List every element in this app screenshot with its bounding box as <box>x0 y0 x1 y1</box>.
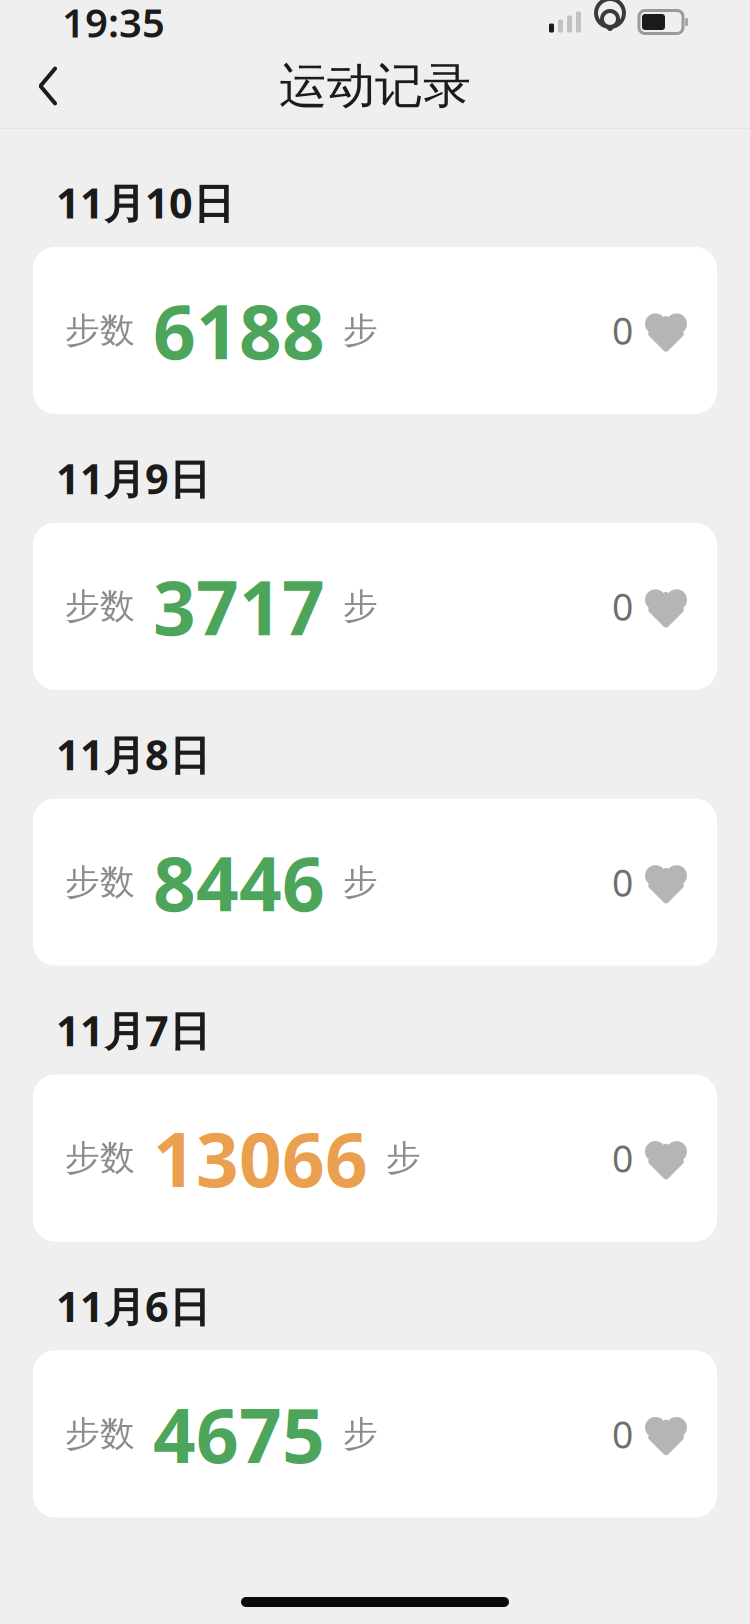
staticText: 运动记录 <box>279 56 471 115</box>
staticText: 11月7日 <box>56 1003 210 1058</box>
staticText: 19:35 <box>62 0 165 48</box>
button[interactable]: 步数 <box>33 1075 717 1242</box>
staticText: 6188 <box>153 281 325 380</box>
staticText: 11月10日 <box>56 175 234 230</box>
button[interactable]: Back <box>18 56 78 116</box>
staticText: 8446 <box>153 833 325 932</box>
staticText: 13066 <box>153 1108 368 1208</box>
staticText: 11月8日 <box>56 727 210 782</box>
staticText: 步数 <box>65 1137 135 1179</box>
staticText: 步 <box>343 1413 378 1455</box>
button[interactable]: 步数 <box>33 523 717 690</box>
staticText: 11月9日 <box>56 451 210 506</box>
staticText: 0 <box>612 306 633 355</box>
staticText: 11月6日 <box>56 1279 210 1333</box>
staticText: 步数 <box>65 585 135 628</box>
staticText: 步 <box>343 861 378 903</box>
staticText: 0 <box>612 1409 633 1459</box>
staticText: 步 <box>343 585 378 628</box>
staticText: 0 <box>612 857 633 907</box>
button[interactable]: 步数 <box>33 247 717 414</box>
staticText: 步数 <box>65 309 135 352</box>
button[interactable]: 步数 <box>33 1350 717 1517</box>
staticText: 步数 <box>65 1413 135 1455</box>
staticText: 步 <box>343 309 378 352</box>
staticText: 步 <box>386 1137 421 1179</box>
staticText: 3717 <box>153 557 325 656</box>
staticText: 步数 <box>65 861 135 903</box>
staticText: 4675 <box>153 1384 325 1484</box>
staticText: 0 <box>612 581 633 631</box>
staticText: 0 <box>612 1133 633 1183</box>
button[interactable]: 步数 <box>33 799 717 966</box>
